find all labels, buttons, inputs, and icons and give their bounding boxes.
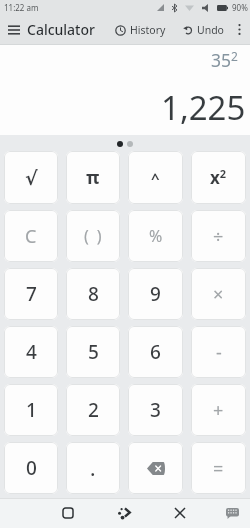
- staticText: +: [213, 398, 224, 423]
- staticText: 7: [26, 281, 37, 307]
- button[interactable]: [164, 498, 196, 528]
- staticText: 352: [211, 48, 238, 72]
- button[interactable]: -: [191, 326, 246, 378]
- button[interactable]: History: [111, 17, 170, 43]
- staticText: 9: [150, 281, 161, 307]
- button[interactable]: √: [4, 151, 58, 204]
- button[interactable]: ×: [191, 268, 246, 320]
- staticText: 6: [150, 339, 161, 365]
- staticText: History: [130, 23, 166, 37]
- staticText: 4: [26, 339, 37, 365]
- button[interactable]: [218, 498, 246, 528]
- staticText: ÷: [213, 224, 224, 249]
- staticText: ( ): [84, 225, 102, 247]
- staticText: 0: [26, 455, 37, 481]
- button[interactable]: ^: [128, 151, 183, 204]
- button[interactable]: Undo: [179, 17, 228, 43]
- staticText: %: [149, 225, 163, 247]
- staticText: Undo: [197, 23, 224, 37]
- staticText: x2: [210, 166, 227, 189]
- staticText: =: [213, 456, 224, 481]
- staticText: 8: [88, 281, 99, 307]
- staticText: 90%: [232, 2, 248, 13]
- button[interactable]: [52, 498, 84, 528]
- button[interactable]: %: [128, 210, 183, 262]
- staticText: C: [25, 224, 37, 249]
- button[interactable]: 8: [66, 268, 120, 320]
- button[interactable]: x2: [191, 151, 246, 204]
- button[interactable]: 7: [4, 268, 58, 320]
- button[interactable]: =: [191, 442, 246, 494]
- button[interactable]: [128, 442, 183, 494]
- button[interactable]: π: [66, 151, 120, 204]
- button[interactable]: 4: [4, 326, 58, 378]
- staticText: √: [25, 167, 38, 189]
- staticText: -: [216, 340, 222, 365]
- button[interactable]: [228, 15, 250, 44]
- button[interactable]: ( ): [66, 210, 120, 262]
- button[interactable]: 2: [66, 384, 120, 436]
- staticText: 1: [26, 397, 37, 423]
- button[interactable]: .: [66, 442, 120, 494]
- button[interactable]: 3: [128, 384, 183, 436]
- button[interactable]: +: [191, 384, 246, 436]
- button[interactable]: C: [4, 210, 58, 262]
- button[interactable]: 6: [128, 326, 183, 378]
- staticText: 2: [88, 397, 99, 423]
- staticText: ×: [213, 282, 224, 307]
- staticText: 5: [88, 339, 99, 365]
- staticText: 1,225: [161, 85, 246, 130]
- button[interactable]: 5: [66, 326, 120, 378]
- button[interactable]: [108, 498, 140, 528]
- staticText: 11:22 am: [4, 2, 39, 13]
- staticText: .: [90, 455, 96, 482]
- staticText: π: [86, 165, 100, 190]
- button[interactable]: 1: [4, 384, 58, 436]
- button[interactable]: [0, 15, 27, 44]
- button[interactable]: 9: [128, 268, 183, 320]
- staticText: Calculator: [27, 20, 95, 39]
- staticText: ^: [151, 168, 160, 188]
- button[interactable]: 0: [4, 442, 58, 494]
- button[interactable]: ÷: [191, 210, 246, 262]
- staticText: 3: [150, 397, 161, 423]
